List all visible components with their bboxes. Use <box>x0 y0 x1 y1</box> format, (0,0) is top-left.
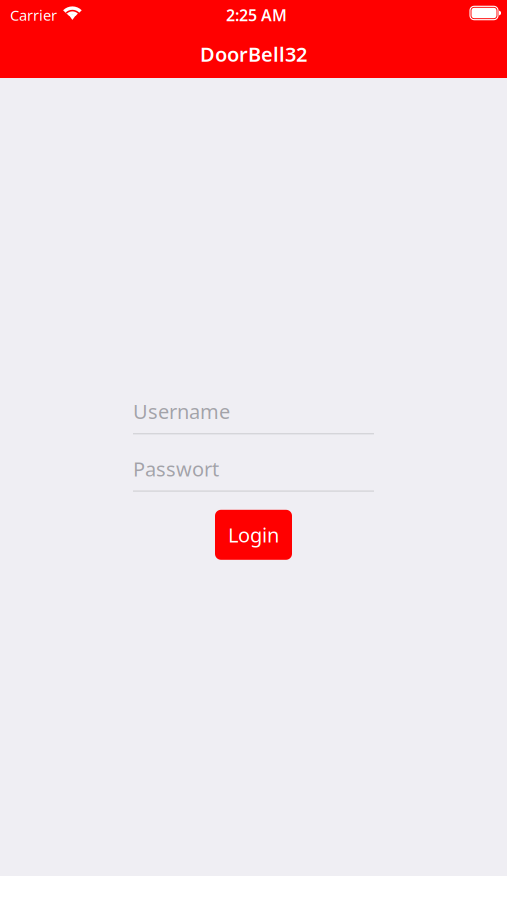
staticText: Carrier <box>10 5 57 25</box>
staticText: Passwort <box>133 455 219 482</box>
staticText: DoorBell32 <box>200 41 307 67</box>
staticText: Login <box>228 521 279 548</box>
staticText: Username <box>133 398 230 425</box>
staticText: 2:25 AM <box>226 4 287 26</box>
button[interactable]: Username <box>133 395 374 434</box>
button[interactable]: Passwort <box>133 452 374 492</box>
button[interactable]: Login <box>215 510 292 560</box>
